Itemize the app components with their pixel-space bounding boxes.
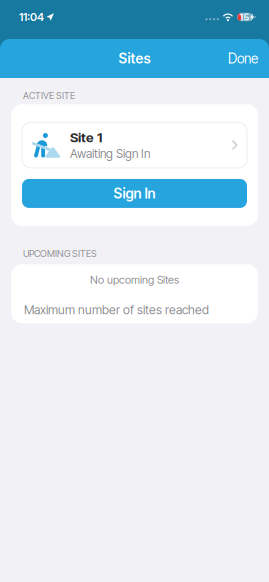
staticText: Sites <box>118 50 150 67</box>
staticText: Done <box>228 50 258 67</box>
staticText: UPCOMING SITES <box>23 248 97 259</box>
staticText: Site 1 <box>70 129 102 145</box>
staticText: 15 <box>239 11 249 23</box>
button[interactable]: Site 1 <box>22 122 247 168</box>
button[interactable]: Done <box>217 41 269 76</box>
staticText: No upcoming Sites <box>90 273 179 286</box>
staticText: Awaiting Sign In <box>70 146 150 161</box>
staticText: ACTIVE SITE <box>23 90 75 101</box>
staticText: Sign In <box>113 185 155 202</box>
button[interactable]: Sign In <box>22 179 247 208</box>
staticText: Maximum number of sites reached <box>24 302 209 317</box>
staticText: 11:04 <box>19 10 44 24</box>
